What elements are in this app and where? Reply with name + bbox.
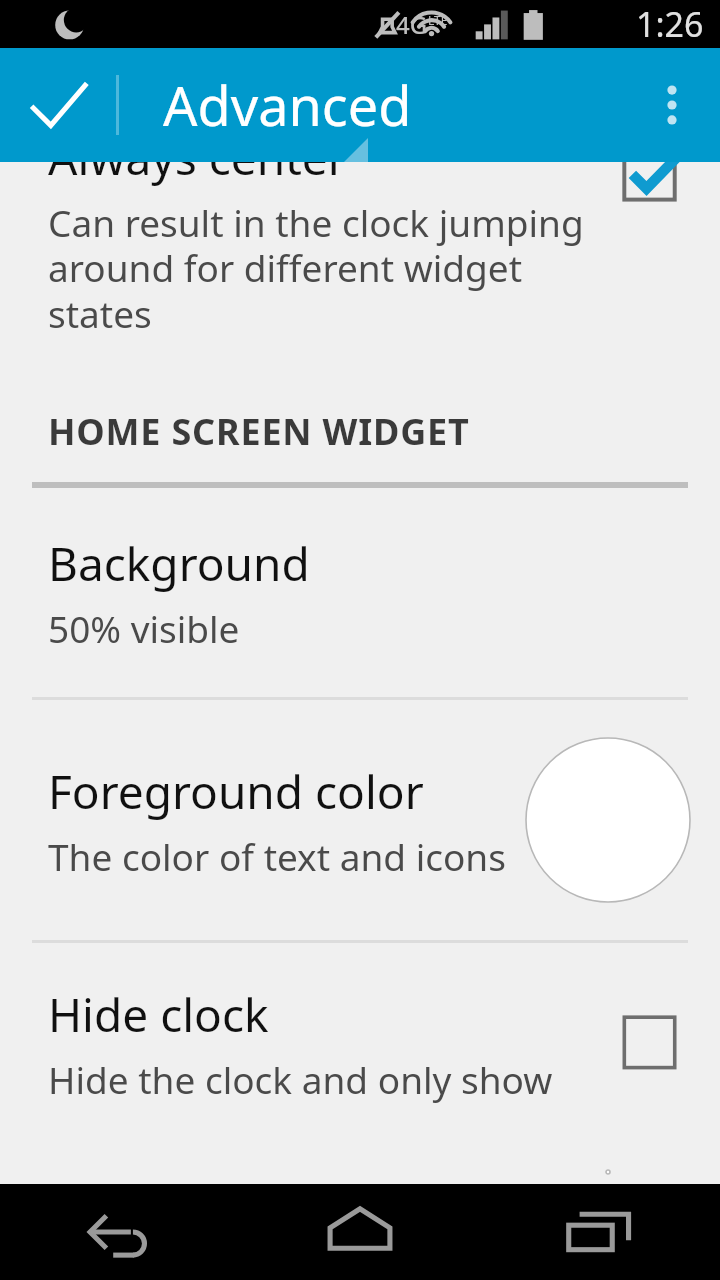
staticText: Hide clock (48, 983, 269, 1046)
button[interactable]: Advanced (119, 48, 624, 162)
staticText: Advanced (163, 68, 412, 142)
button[interactable]: Background (0, 488, 720, 697)
button[interactable]: Home (240, 1184, 480, 1280)
button[interactable]: Always center (0, 162, 720, 367)
staticText: Background (48, 532, 310, 595)
staticText: Hide the clock and only show extensions (48, 1054, 604, 1108)
button[interactable]: Hide clock (0, 943, 720, 1136)
button[interactable]: Foreground color (0, 700, 720, 940)
staticText: 50% visible (48, 603, 240, 653)
button[interactable]: More options (624, 48, 720, 162)
staticText: Always center (48, 162, 347, 189)
staticText: LTE (428, 12, 448, 28)
button[interactable]: Recent apps (480, 1184, 720, 1280)
staticText: Foreground color (48, 760, 424, 823)
staticText: 4G (396, 8, 428, 41)
staticText: Can result in the clock jumping around f… (48, 197, 604, 339)
staticText: 1:26 (636, 1, 704, 47)
button[interactable]: Done (0, 48, 116, 162)
staticText: The color of text and icons (48, 831, 506, 881)
button[interactable]: Back (0, 1184, 240, 1280)
staticText: HOME SCREEN WIDGET (48, 407, 470, 456)
